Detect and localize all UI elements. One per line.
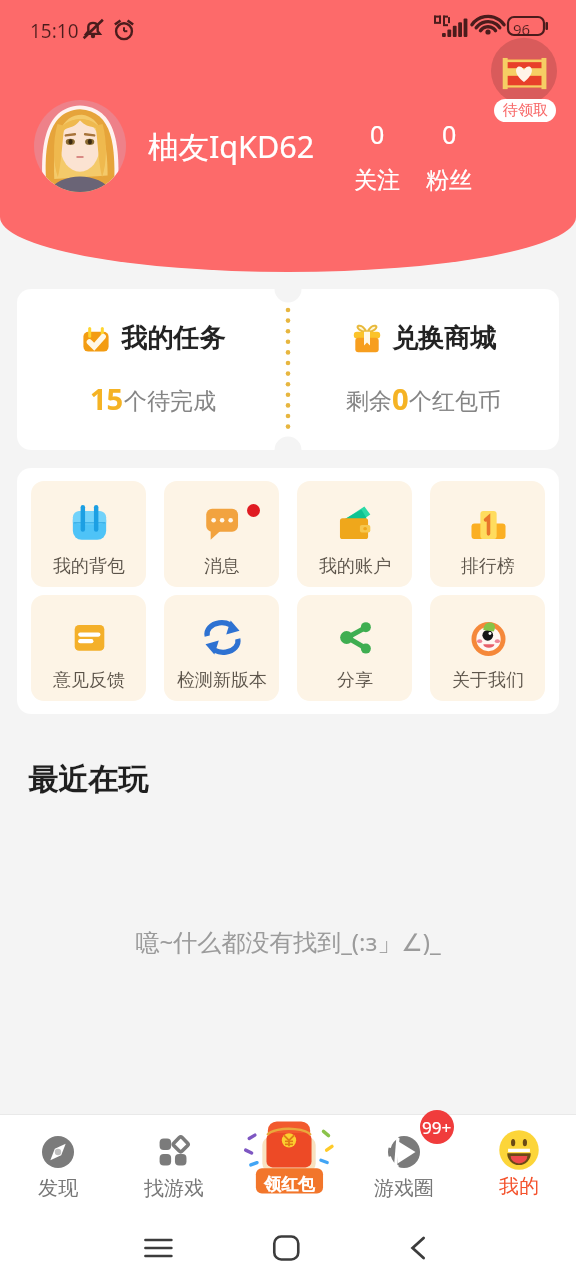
staticText: 96 <box>513 19 531 39</box>
staticText: 99+ <box>422 1116 452 1139</box>
staticText: 剩余 <box>346 387 392 416</box>
button[interactable]: 游戏圈 <box>346 1115 461 1225</box>
button[interactable]: 0 <box>346 117 408 195</box>
button[interactable]: 分享 <box>297 595 412 701</box>
button[interactable]: 0 <box>418 117 480 195</box>
staticText: 关注 <box>354 166 400 195</box>
staticText: 最近在玩 <box>28 761 148 799</box>
staticText: 个待完成 <box>124 387 216 416</box>
staticText: 意见反馈 <box>53 669 125 692</box>
button[interactable]: 兑换商城 <box>288 289 559 450</box>
staticText: 找游戏 <box>144 1176 204 1201</box>
staticText: 排行榜 <box>461 555 515 578</box>
staticText: 待领取 <box>503 101 548 120</box>
staticText: 柚友IqKD62 <box>148 125 315 167</box>
staticText: 我的账户 <box>319 555 391 578</box>
staticText: 领红包 <box>264 1174 315 1195</box>
staticText: 消息 <box>204 555 240 578</box>
button[interactable]: 领红包 <box>231 1115 346 1225</box>
button[interactable]: 我的任务 <box>17 289 288 450</box>
button[interactable]: 关于我们 <box>430 595 545 701</box>
staticText: 游戏圈 <box>374 1176 434 1201</box>
staticText: 我的 <box>499 1174 539 1199</box>
button[interactable]: 检测新版本 <box>164 595 279 701</box>
staticText: 检测新版本 <box>177 669 267 692</box>
button[interactable]: 头像 <box>34 100 126 192</box>
button[interactable]: 消息 <box>164 481 279 587</box>
staticText: 0 <box>370 117 385 151</box>
button[interactable]: 我的背包 <box>31 481 146 587</box>
staticText: 我的任务 <box>121 322 225 355</box>
staticText: 0 <box>392 379 409 418</box>
button[interactable]: 我的 <box>461 1115 576 1225</box>
staticText: 0 <box>442 117 457 151</box>
button[interactable]: 发现 <box>0 1115 116 1225</box>
staticText: 15 <box>90 379 124 418</box>
button[interactable]: 找游戏 <box>116 1115 231 1225</box>
staticText: 我的背包 <box>53 555 125 578</box>
button[interactable]: 待领取宝箱 <box>486 42 562 118</box>
staticText: 发现 <box>38 1176 78 1201</box>
staticText: 分享 <box>337 669 373 692</box>
staticText: 噫~什么都没有找到_(:ɜ」∠)_ <box>0 925 576 958</box>
staticText: 15:10 <box>30 18 79 44</box>
staticText: 关于我们 <box>452 669 524 692</box>
button[interactable]: 排行榜 <box>430 481 545 587</box>
staticText: 个红包币 <box>409 387 501 416</box>
staticText: 粉丝 <box>426 166 472 195</box>
button[interactable]: 我的账户 <box>297 481 412 587</box>
button[interactable]: 意见反馈 <box>31 595 146 701</box>
staticText: 兑换商城 <box>392 322 496 355</box>
